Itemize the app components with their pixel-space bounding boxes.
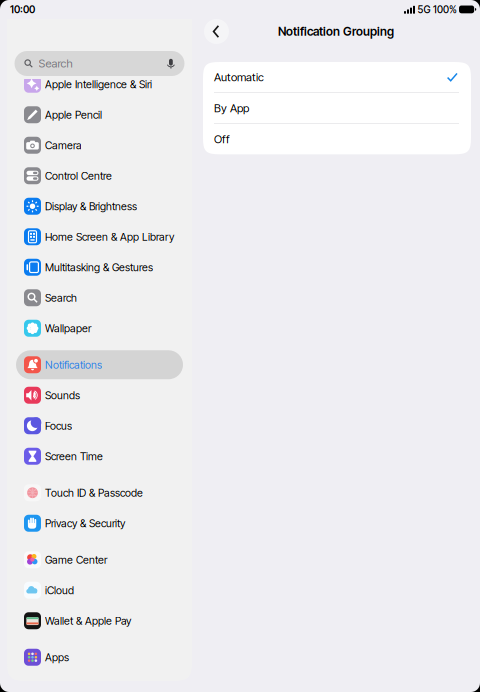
staticText: Multitasking & Gestures (45, 261, 153, 274)
button[interactable]: Wallpaper (16, 313, 183, 343)
button[interactable]: Game Center (16, 544, 183, 575)
staticText: Privacy & Security (45, 517, 125, 530)
button[interactable]: Notifications (16, 349, 183, 380)
staticText: Automatic (214, 70, 264, 84)
staticText: Wallet & Apple Pay (45, 614, 131, 627)
button[interactable]: Back (204, 19, 229, 44)
button[interactable]: Home Screen & App Library (16, 221, 183, 252)
staticText: Display & Brightness (45, 200, 137, 213)
staticText: Screen Time (45, 450, 103, 463)
button[interactable]: By App (203, 93, 471, 124)
button[interactable]: iCloud (16, 575, 183, 605)
button[interactable]: Search (16, 282, 183, 313)
button[interactable]: Focus (16, 410, 183, 441)
staticText: By App (214, 101, 249, 115)
button[interactable]: Sounds (16, 380, 183, 410)
staticText: Apple Pencil (45, 108, 102, 121)
staticText: Apple Intelligence & Siri (45, 78, 152, 91)
button[interactable]: Apple Intelligence & Siri (16, 69, 183, 99)
staticText: Camera (45, 139, 82, 152)
button[interactable]: Screen Time (16, 441, 183, 471)
staticText: Apps (45, 651, 69, 664)
staticText: Sounds (45, 389, 80, 402)
staticText: Control Centre (45, 169, 112, 182)
button[interactable]: Automatic (203, 62, 471, 93)
staticText: 10:00 (10, 3, 35, 16)
staticText: Off (214, 132, 230, 146)
button[interactable]: Camera (16, 130, 183, 160)
button[interactable]: Wallet & Apple Pay (16, 605, 183, 636)
staticText: iCloud (45, 584, 74, 597)
button[interactable]: Off (203, 124, 471, 154)
staticText: Search (38, 57, 72, 70)
staticText: Touch ID & Passcode (45, 486, 143, 499)
button[interactable]: Privacy & Security (16, 508, 183, 538)
button[interactable]: Touch ID & Passcode (16, 477, 183, 508)
staticText: Focus (45, 419, 72, 432)
button[interactable]: Multitasking & Gestures (16, 252, 183, 282)
staticText: Search (45, 291, 77, 304)
button[interactable]: Display & Brightness (16, 191, 183, 221)
button[interactable]: Apple Pencil (16, 99, 183, 130)
staticText: Game Center (45, 553, 107, 566)
staticText: 100% (433, 3, 457, 16)
button[interactable]: Search (7, 19, 192, 79)
staticText: 5G (417, 3, 430, 16)
staticText: Wallpaper (45, 322, 91, 335)
staticText: Notifications (45, 358, 102, 371)
staticText: Home Screen & App Library (45, 230, 174, 243)
button[interactable]: Apps (16, 642, 183, 672)
staticText: Notification Grouping (278, 24, 394, 39)
button[interactable]: Control Centre (16, 160, 183, 191)
